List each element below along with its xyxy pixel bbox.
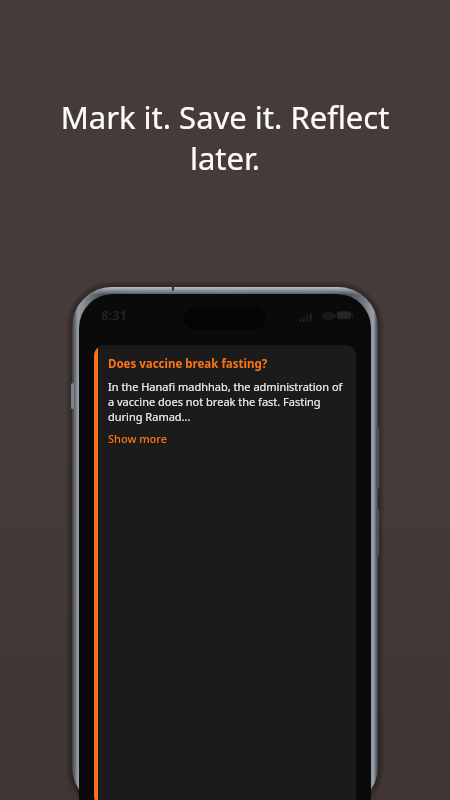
staticText: Show more (108, 431, 168, 446)
staticText: 8:31 (101, 306, 127, 324)
button[interactable]: Show more (108, 431, 168, 446)
button[interactable]: Does vaccine break fasting? (94, 345, 356, 800)
staticText: In the Hanafi madhhab, the administratio… (108, 379, 343, 424)
staticText: Does vaccine break fasting? (108, 356, 268, 372)
staticText: Mark it. Save it. Reflect later. (28, 96, 422, 179)
